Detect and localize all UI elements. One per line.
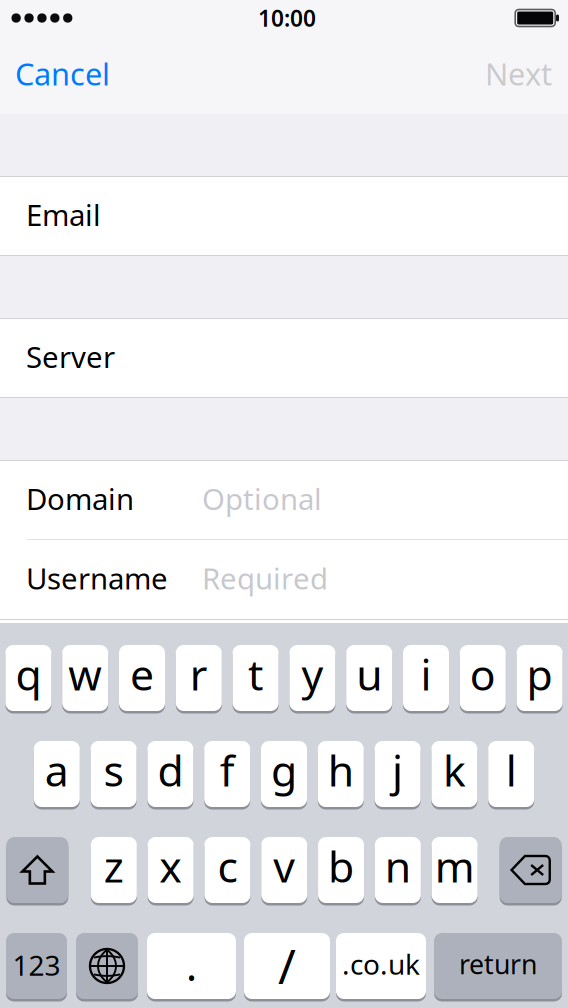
button[interactable]: g bbox=[261, 741, 307, 807]
button[interactable]: a bbox=[34, 741, 80, 807]
staticText: n bbox=[385, 838, 411, 894]
staticText: i bbox=[420, 646, 431, 702]
staticText: a bbox=[45, 742, 69, 798]
button[interactable]: j bbox=[375, 741, 421, 807]
button[interactable]: k bbox=[431, 741, 477, 807]
button[interactable]: s bbox=[91, 741, 137, 807]
button[interactable]: . bbox=[147, 933, 236, 999]
staticText: x bbox=[159, 838, 182, 894]
button[interactable]: x bbox=[148, 837, 194, 903]
button[interactable]: n bbox=[375, 837, 421, 903]
staticText: d bbox=[157, 742, 183, 798]
button[interactable]: / bbox=[244, 933, 330, 999]
staticText: y bbox=[301, 646, 323, 702]
button[interactable]: q bbox=[5, 645, 51, 711]
staticText: r bbox=[190, 646, 208, 702]
button[interactable]: i bbox=[403, 645, 449, 711]
staticText: s bbox=[104, 742, 124, 798]
button[interactable]: r bbox=[176, 645, 222, 711]
button[interactable]: p bbox=[517, 645, 563, 711]
button[interactable]: c bbox=[204, 837, 250, 903]
staticText: Server bbox=[26, 337, 115, 376]
staticText: Next bbox=[485, 53, 552, 94]
button[interactable]: Next bbox=[467, 36, 568, 117]
staticText: / bbox=[278, 934, 296, 997]
button[interactable]: Username bbox=[0, 540, 568, 619]
button[interactable]: e bbox=[119, 645, 165, 711]
button[interactable]: u bbox=[346, 645, 392, 711]
button[interactable]: l bbox=[488, 741, 534, 807]
staticText: c bbox=[217, 838, 237, 894]
staticText: 10:00 bbox=[258, 3, 316, 33]
button[interactable]: Delete bbox=[500, 837, 562, 903]
staticText: j bbox=[392, 742, 403, 798]
staticText: t bbox=[248, 646, 263, 702]
staticText: Domain bbox=[26, 479, 134, 518]
staticText: Optional bbox=[202, 479, 322, 518]
staticText: p bbox=[527, 646, 553, 702]
staticText: Email bbox=[26, 195, 101, 234]
button[interactable]: t bbox=[233, 645, 279, 711]
button[interactable]: m bbox=[432, 837, 478, 903]
button[interactable]: v bbox=[261, 837, 307, 903]
button[interactable]: Next keyboard bbox=[76, 933, 138, 999]
staticText: e bbox=[130, 646, 154, 702]
staticText: .co.uk bbox=[342, 945, 420, 983]
staticText: q bbox=[15, 646, 41, 702]
button[interactable]: d bbox=[147, 741, 193, 807]
staticText: v bbox=[273, 838, 295, 894]
staticText: f bbox=[220, 742, 235, 798]
staticText: return bbox=[459, 946, 537, 982]
staticText: Cancel bbox=[15, 53, 110, 94]
staticText: l bbox=[506, 742, 517, 798]
button[interactable]: Email bbox=[0, 177, 568, 255]
button[interactable]: z bbox=[91, 837, 137, 903]
button[interactable]: Shift bbox=[6, 837, 68, 903]
button[interactable]: Domain bbox=[0, 461, 568, 539]
staticText: h bbox=[328, 742, 354, 798]
staticText: 123 bbox=[12, 946, 60, 984]
button[interactable]: Server bbox=[0, 319, 568, 397]
button[interactable]: 123 bbox=[6, 933, 67, 999]
button[interactable]: w bbox=[62, 645, 108, 711]
staticText: b bbox=[328, 838, 354, 894]
button[interactable]: o bbox=[460, 645, 506, 711]
button[interactable]: return bbox=[434, 933, 562, 999]
staticText: u bbox=[356, 646, 382, 702]
button[interactable]: y bbox=[289, 645, 335, 711]
staticText: k bbox=[443, 742, 466, 798]
button[interactable]: h bbox=[318, 741, 364, 807]
staticText: w bbox=[68, 646, 102, 702]
button[interactable]: f bbox=[204, 741, 250, 807]
staticText: m bbox=[435, 838, 475, 894]
button[interactable]: b bbox=[318, 837, 364, 903]
staticText: z bbox=[104, 838, 124, 894]
staticText: Required bbox=[202, 558, 328, 597]
staticText: o bbox=[470, 646, 496, 702]
button[interactable]: Cancel bbox=[0, 36, 128, 117]
staticText: . bbox=[186, 938, 197, 992]
staticText: Username bbox=[26, 558, 168, 597]
staticText: g bbox=[271, 742, 297, 798]
button[interactable]: .co.uk bbox=[336, 933, 426, 999]
